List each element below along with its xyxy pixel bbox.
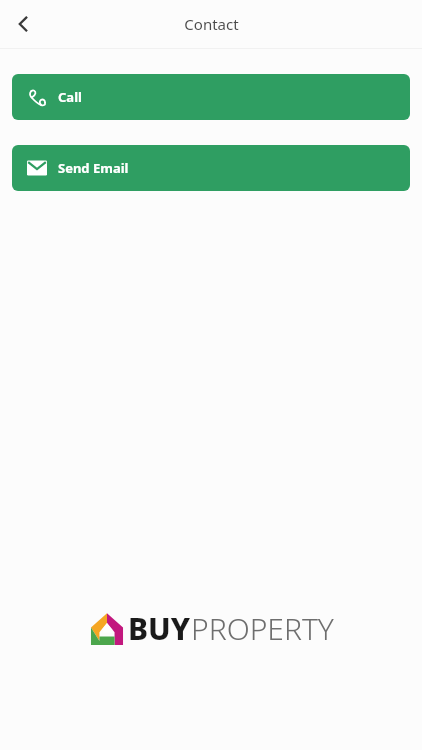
staticText: BUY (128, 608, 191, 649)
staticText: Contact (184, 14, 239, 34)
button[interactable]: Call (12, 74, 410, 120)
button[interactable]: Back (0, 1, 46, 47)
button[interactable]: Send Email (12, 145, 410, 191)
staticText: PROPERTY (191, 608, 334, 649)
staticText: Call (58, 88, 82, 106)
staticText: Send Email (58, 159, 129, 177)
